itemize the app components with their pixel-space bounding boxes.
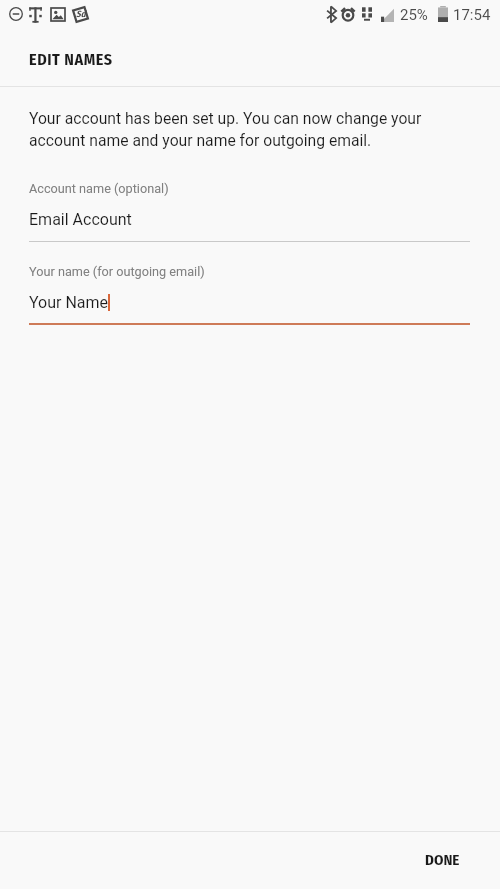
staticText: 17:54 — [453, 6, 491, 24]
staticText: Your name (for outgoing email) — [29, 264, 205, 279]
staticText: Your Name — [29, 293, 109, 312]
staticText: Your account has been set up. You can no… — [29, 109, 422, 150]
staticText: Account name (optional) — [29, 181, 169, 196]
staticText: DONE — [425, 851, 460, 869]
button[interactable]: DONE — [384, 832, 500, 889]
staticText: Sd — [76, 9, 86, 20]
staticText: 25% — [400, 6, 428, 24]
staticText: EDIT NAMES — [29, 50, 113, 69]
staticText: Email Account — [29, 210, 132, 229]
